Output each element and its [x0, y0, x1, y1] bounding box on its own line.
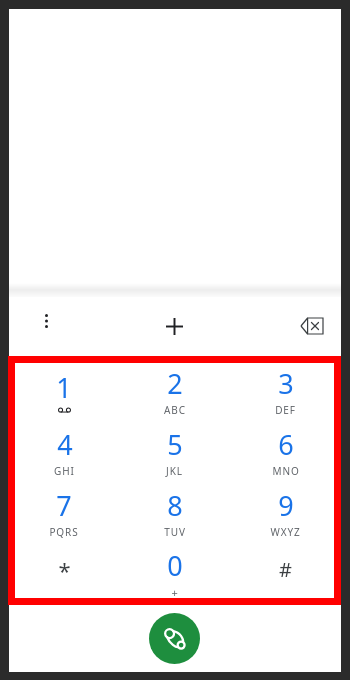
staticText: + [171, 585, 179, 600]
button[interactable]: More options [22, 297, 70, 345]
staticText: * [58, 555, 71, 585]
staticText: 8 [167, 487, 183, 524]
staticText: WXYZ [270, 525, 301, 539]
staticText: 9 [278, 487, 294, 524]
staticText: PQRS [49, 525, 79, 539]
button[interactable]: 1 [9, 361, 119, 421]
staticText: 0 [167, 547, 183, 584]
button[interactable]: 7 [9, 482, 119, 543]
button[interactable]: # [230, 543, 341, 603]
staticText: GHI [54, 464, 75, 478]
staticText: 1 [56, 369, 72, 406]
staticText: 7 [56, 487, 72, 524]
button[interactable]: 8 [119, 482, 230, 543]
button[interactable]: 2 [119, 361, 230, 421]
button[interactable]: * [9, 543, 119, 603]
button[interactable]: 0 [119, 543, 230, 603]
staticText: 2 [167, 365, 183, 402]
staticText: 5 [167, 426, 183, 463]
button[interactable]: 3 [230, 361, 341, 421]
staticText: JKL [166, 464, 183, 478]
button[interactable]: 5 [119, 421, 230, 482]
button[interactable]: Add plus [150, 302, 198, 350]
button[interactable]: 4 [9, 421, 119, 482]
staticText: # [279, 556, 292, 583]
staticText: 4 [57, 426, 73, 463]
staticText: 3 [278, 365, 294, 402]
button[interactable]: 9 [230, 482, 341, 543]
staticText: TUV [164, 525, 186, 539]
button[interactable]: Call [149, 613, 200, 664]
staticText: DEF [275, 403, 296, 417]
button[interactable]: 6 [230, 421, 341, 482]
staticText: 6 [278, 426, 294, 463]
staticText: ABC [164, 403, 186, 417]
button[interactable]: Backspace [288, 302, 336, 350]
staticText: MNO [272, 464, 300, 478]
